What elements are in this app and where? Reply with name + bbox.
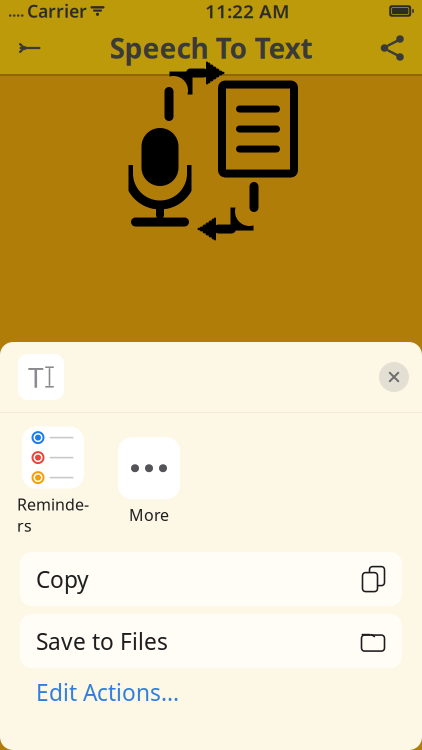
- button[interactable]: Edit Actions...: [0, 668, 422, 716]
- staticText: Carrier: [27, 0, 87, 22]
- button[interactable]: More: [112, 437, 186, 525]
- button[interactable]: Save to Files: [20, 614, 402, 668]
- button[interactable]: Back: [8, 26, 52, 70]
- staticText: Reminders: [17, 494, 89, 536]
- staticText: ....: [8, 1, 24, 21]
- staticText: Save to Files: [36, 626, 168, 656]
- staticText: Edit Actions...: [36, 677, 179, 707]
- button[interactable]: Share: [370, 26, 414, 70]
- staticText: Speech To Text: [109, 29, 312, 67]
- button[interactable]: Reminders: [16, 427, 90, 536]
- staticText: T: [28, 358, 44, 396]
- staticText: Copy: [36, 564, 89, 594]
- button[interactable]: Close: [372, 355, 416, 399]
- staticText: 11:22 AM: [205, 0, 289, 23]
- button[interactable]: Copy: [20, 552, 402, 606]
- staticText: More: [129, 504, 169, 525]
